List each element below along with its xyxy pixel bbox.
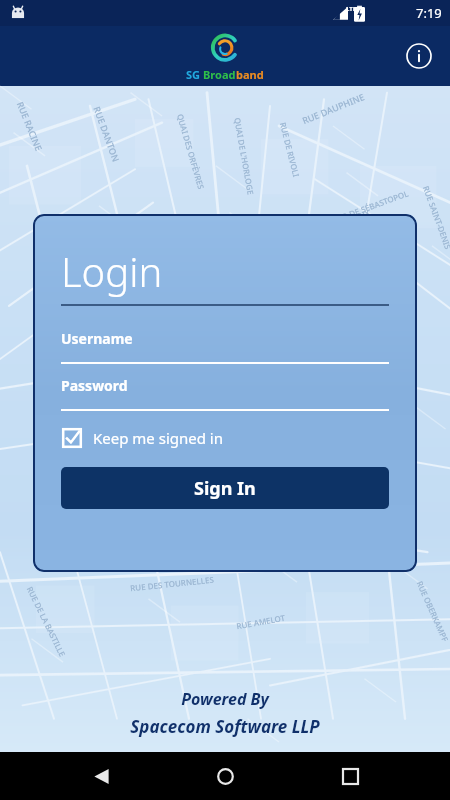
staticText: Keep me signed in — [93, 428, 223, 448]
button[interactable]: Home — [201, 752, 249, 800]
staticText: RUE OBERKAMPF — [415, 579, 450, 644]
staticText: RUE DU RENARD — [271, 271, 332, 312]
staticText: SG — [186, 67, 203, 82]
staticText: RUE DES TOURNELLES — [130, 574, 214, 593]
staticText: BOULEVARD DE SÉBASTOPOL — [301, 187, 410, 236]
staticText: QUAI AUX FLEURS — [51, 226, 93, 293]
staticText: Password — [61, 376, 128, 395]
staticText: RUE DE LA BASTILLE — [25, 584, 68, 658]
staticText: RUE QUINCAMPOIX — [296, 206, 372, 240]
staticText: RUE DANTON — [91, 105, 122, 163]
staticText: Login — [61, 244, 163, 298]
staticText: LTE — [346, 5, 357, 13]
staticText: RUE DE RIVOLI — [278, 121, 302, 178]
staticText: RUE AMELOT — [235, 612, 287, 631]
staticText: band — [236, 67, 264, 82]
button[interactable]: Information — [402, 39, 436, 73]
staticText: Username — [61, 329, 133, 348]
staticText: RUE DE BRETAGNE — [387, 434, 420, 505]
staticText: Sign In — [194, 476, 256, 501]
button[interactable]: Sign In — [61, 467, 389, 509]
staticText: Broad — [203, 67, 236, 82]
button[interactable]: Recent apps — [326, 752, 374, 800]
button[interactable]: Keep me signed in — [61, 427, 223, 449]
staticText: RUE VIEILLE DU TEMPLE — [219, 432, 257, 523]
staticText: RUE RACINE — [15, 100, 45, 152]
staticText: Spacecom Software LLP — [130, 715, 320, 738]
staticText: 7:19 — [416, 4, 442, 22]
staticText: RUE DAUPHINE — [300, 90, 367, 126]
staticText: QUAI DES ORFÈVRES — [175, 112, 207, 190]
staticText: QUAI DE L'HORLOGE — [232, 117, 257, 196]
staticText: Powered By — [181, 688, 269, 710]
staticText: RUE SAINT-DENIS — [421, 184, 450, 251]
button[interactable]: Back — [77, 752, 125, 800]
